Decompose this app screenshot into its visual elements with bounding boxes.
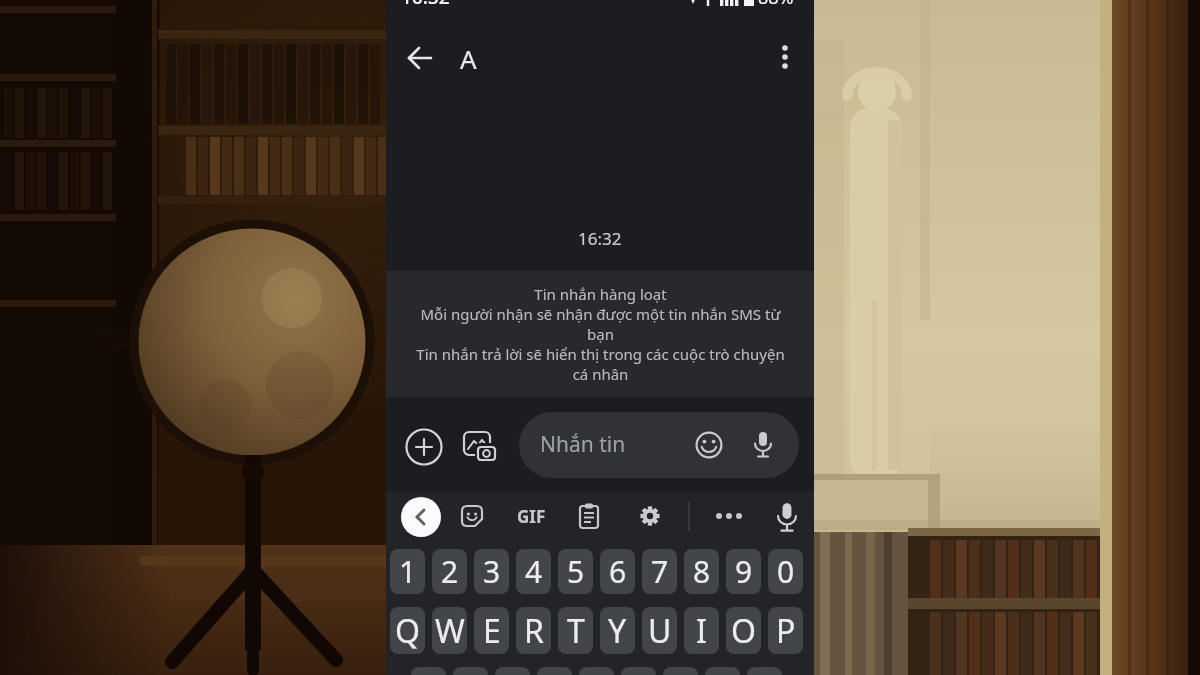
- button[interactable]: [663, 667, 698, 675]
- button[interactable]: [715, 504, 743, 528]
- button[interactable]: [401, 497, 441, 537]
- button[interactable]: 0: [768, 549, 803, 594]
- staticText: 16:32: [578, 227, 622, 250]
- button[interactable]: 8: [684, 549, 719, 594]
- staticText: Y: [608, 609, 627, 653]
- button[interactable]: 5: [558, 549, 593, 594]
- staticText: I: [696, 609, 707, 653]
- staticText: 88%: [758, 0, 794, 10]
- button[interactable]: [579, 667, 614, 675]
- button[interactable]: 3: [474, 549, 509, 594]
- staticText: A: [460, 41, 477, 76]
- button[interactable]: [748, 430, 778, 460]
- staticText: R: [524, 609, 544, 653]
- button[interactable]: P: [768, 607, 803, 654]
- button[interactable]: [537, 667, 572, 675]
- button[interactable]: W: [432, 607, 467, 654]
- button[interactable]: [460, 504, 484, 528]
- button[interactable]: [405, 428, 443, 466]
- button[interactable]: [638, 504, 662, 528]
- button[interactable]: [773, 501, 801, 533]
- staticText: Nhắn tin: [540, 430, 626, 459]
- button[interactable]: [402, 40, 438, 76]
- button[interactable]: T: [558, 607, 593, 654]
- button[interactable]: [621, 667, 656, 675]
- button[interactable]: [462, 430, 498, 466]
- button[interactable]: E: [474, 607, 509, 654]
- staticText: U: [648, 609, 672, 653]
- button[interactable]: R: [516, 607, 551, 654]
- staticText: 5: [567, 551, 585, 592]
- button[interactable]: [411, 667, 446, 675]
- staticText: Q: [395, 609, 420, 653]
- button[interactable]: 1: [390, 549, 425, 594]
- button[interactable]: 6: [600, 549, 635, 594]
- button[interactable]: Y: [600, 607, 635, 654]
- button[interactable]: O: [726, 607, 761, 654]
- staticText: T: [567, 609, 585, 653]
- staticText: E: [483, 609, 501, 653]
- button[interactable]: Nhắn tin: [519, 412, 799, 478]
- button[interactable]: [695, 431, 723, 459]
- staticText: 6: [609, 551, 627, 592]
- button[interactable]: 7: [642, 549, 677, 594]
- button[interactable]: 4: [516, 549, 551, 594]
- button[interactable]: GIF: [514, 504, 548, 528]
- staticText: 7: [651, 551, 669, 592]
- button[interactable]: Q: [390, 607, 425, 654]
- staticText: 2: [441, 551, 459, 592]
- staticText: 3: [483, 551, 501, 592]
- staticText: W: [435, 609, 465, 653]
- staticText: Tin nhắn hàng loạt Mỗi người nhận sẽ nhậ…: [416, 284, 785, 384]
- staticText: 0: [777, 551, 795, 592]
- staticText: GIF: [517, 505, 546, 528]
- button[interactable]: 9: [726, 549, 761, 594]
- button[interactable]: A: [448, 40, 488, 76]
- button[interactable]: U: [642, 607, 677, 654]
- button[interactable]: I: [684, 607, 719, 654]
- staticText: 1: [399, 551, 417, 592]
- staticText: O: [731, 609, 756, 653]
- button[interactable]: [705, 667, 740, 675]
- button[interactable]: [577, 503, 601, 529]
- button[interactable]: 2: [432, 549, 467, 594]
- staticText: 9: [735, 551, 753, 592]
- staticText: 16:32: [401, 0, 450, 10]
- button[interactable]: [747, 667, 782, 675]
- staticText: 4: [525, 551, 543, 592]
- staticText: 8: [693, 551, 711, 592]
- button[interactable]: [453, 667, 488, 675]
- button[interactable]: [495, 667, 530, 675]
- button[interactable]: [767, 39, 803, 75]
- staticText: P: [776, 609, 796, 653]
